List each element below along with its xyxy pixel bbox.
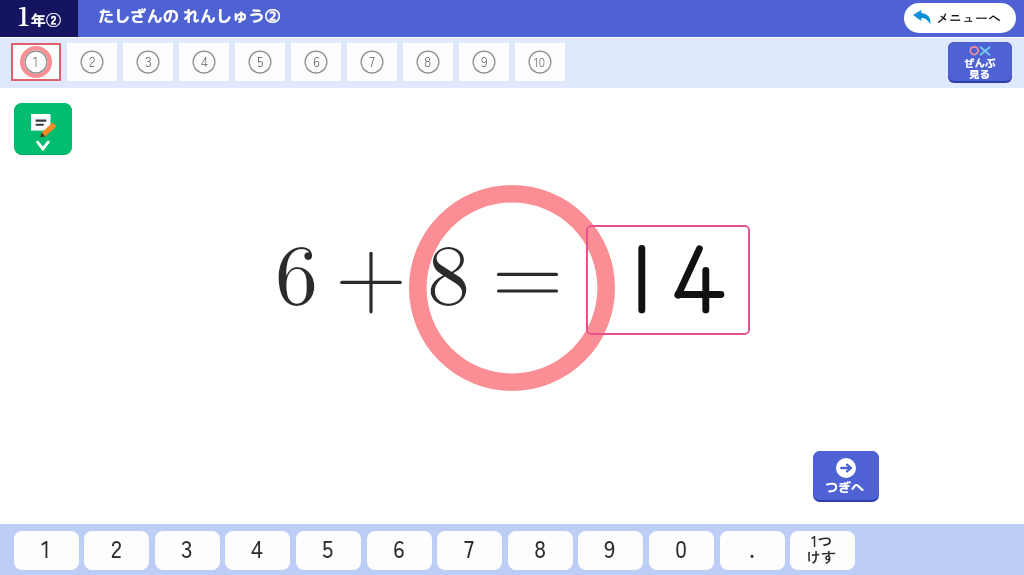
button[interactable]: ぜんぶ: [948, 42, 1012, 83]
staticText: 9: [481, 51, 488, 71]
staticText: メニューへ: [936, 8, 1002, 27]
button[interactable]: 7: [347, 43, 397, 81]
staticText: 8: [427, 207, 470, 327]
staticText: 10: [534, 52, 546, 70]
button[interactable]: 8: [508, 531, 573, 570]
staticText: 1つ: [811, 531, 833, 550]
staticText: 6: [393, 531, 405, 564]
staticText: たしざんの れんしゅう②: [98, 5, 281, 28]
button[interactable]: 9: [459, 43, 509, 81]
button[interactable]: こたえ 14: [586, 225, 750, 335]
button[interactable]: 2: [67, 43, 117, 81]
staticText: 年②: [31, 9, 62, 31]
button[interactable]: .: [720, 531, 785, 570]
button[interactable]: 3: [155, 531, 220, 570]
staticText: .: [749, 531, 756, 564]
staticText: 6: [275, 207, 318, 327]
staticText: 8: [534, 531, 547, 564]
button[interactable]: 0: [649, 531, 714, 570]
button[interactable]: 3: [123, 43, 173, 81]
button[interactable]: 10: [515, 43, 565, 81]
button[interactable]: 5: [296, 531, 361, 570]
button[interactable]: 7: [437, 531, 502, 570]
staticText: 9: [604, 531, 616, 564]
staticText: ぜんぶ: [964, 56, 996, 71]
staticText: 2: [89, 51, 96, 71]
staticText: けす: [806, 546, 837, 566]
staticText: 8: [424, 51, 432, 71]
staticText: 3: [181, 531, 193, 564]
button[interactable]: 1: [11, 43, 61, 81]
staticText: 5: [257, 51, 264, 71]
staticText: 2: [111, 531, 122, 564]
staticText: 7: [369, 51, 375, 71]
staticText: 3: [145, 51, 152, 71]
button[interactable]: 4: [179, 43, 229, 81]
button[interactable]: 8: [403, 43, 453, 81]
button[interactable]: 5: [235, 43, 285, 81]
button[interactable]: 1つ: [790, 531, 855, 570]
button[interactable]: 6: [367, 531, 432, 570]
staticText: 1: [33, 51, 39, 71]
staticText: 7: [464, 531, 474, 564]
staticText: 5: [322, 531, 334, 564]
staticText: 見る: [969, 67, 990, 82]
button[interactable]: つぎへ: [813, 451, 879, 502]
button[interactable]: 1: [14, 531, 79, 570]
staticText: 6: [313, 51, 320, 71]
staticText: 4: [251, 531, 263, 564]
button[interactable]: メニューへ: [904, 3, 1016, 33]
staticText: 1: [41, 531, 51, 564]
button[interactable]: 9: [578, 531, 643, 570]
button[interactable]: 6: [291, 43, 341, 81]
button[interactable]: メモ: [14, 103, 72, 155]
staticText: 1: [17, 0, 31, 32]
button[interactable]: 2: [84, 531, 149, 570]
staticText: つぎへ: [825, 478, 865, 496]
staticText: 4: [201, 51, 208, 71]
button[interactable]: 4: [225, 531, 290, 570]
staticText: 0: [675, 531, 688, 564]
